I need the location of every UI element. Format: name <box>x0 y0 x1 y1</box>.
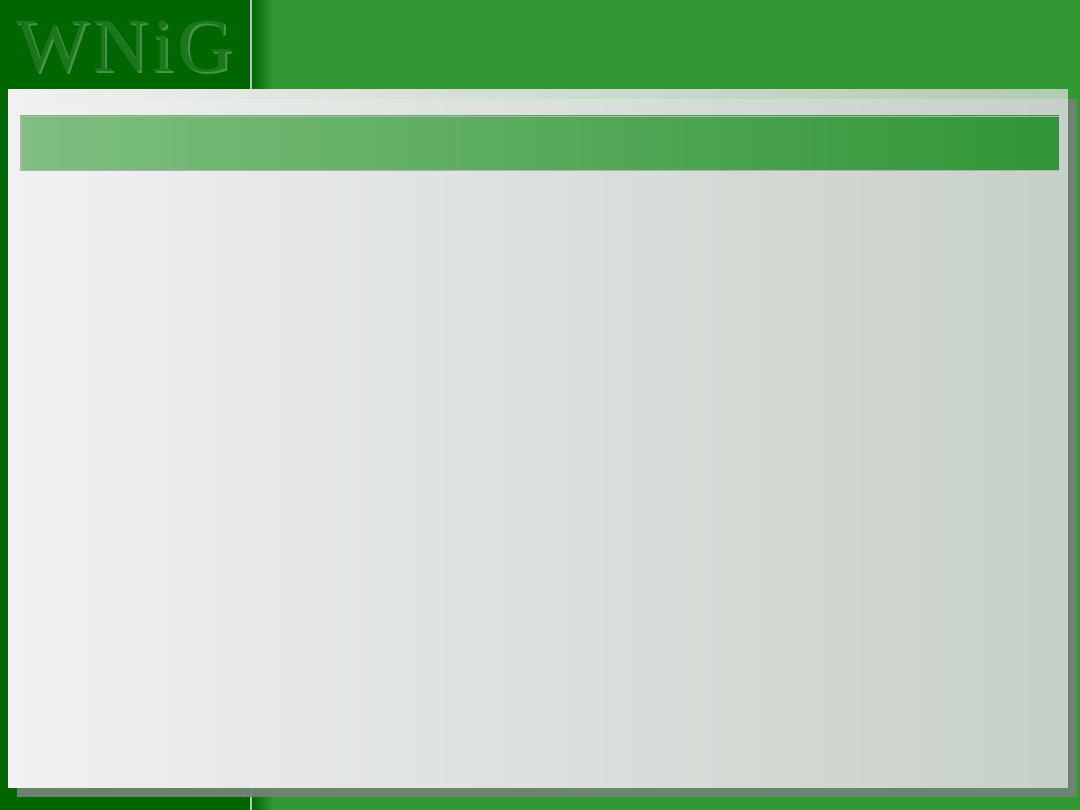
button[interactable]: Slide title bar <box>20 115 1059 171</box>
button[interactable]: WNiG home <box>16 2 237 87</box>
staticText: WNiG <box>18 4 239 89</box>
staticText: WNiG <box>16 2 237 87</box>
